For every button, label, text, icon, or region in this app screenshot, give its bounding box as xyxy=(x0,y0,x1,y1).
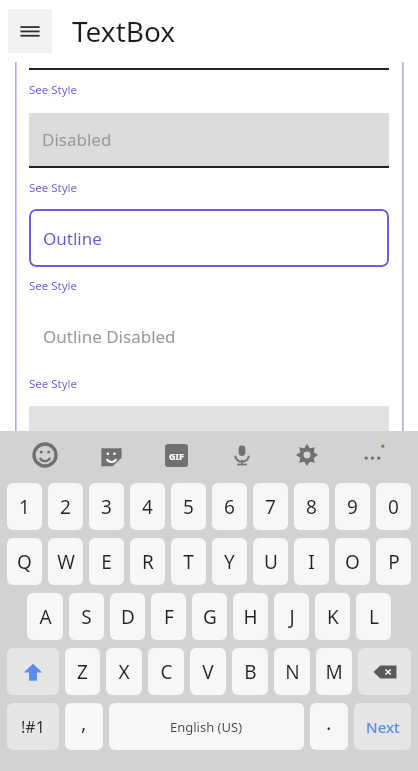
staticText: A xyxy=(39,604,52,630)
staticText: R xyxy=(142,549,154,575)
button[interactable]: B xyxy=(232,648,268,695)
button[interactable]: H xyxy=(233,593,268,640)
button[interactable]: S xyxy=(69,593,104,640)
staticText: TextBox xyxy=(72,12,176,50)
staticText: . xyxy=(326,709,332,736)
staticText: T xyxy=(183,549,194,575)
button[interactable]: Backspace xyxy=(358,648,411,695)
staticText: V xyxy=(202,659,214,685)
button[interactable]: Stickers xyxy=(91,435,131,475)
button[interactable]: Y xyxy=(212,538,247,585)
staticText: E xyxy=(101,549,112,575)
button[interactable]: See Style xyxy=(29,82,78,98)
button[interactable]: 9 xyxy=(335,483,370,530)
staticText: Disabled xyxy=(42,128,112,151)
button[interactable]: See Style xyxy=(29,278,78,294)
button[interactable]: E xyxy=(89,538,124,585)
button[interactable] xyxy=(29,406,389,444)
staticText: C xyxy=(160,659,173,685)
staticText: 0 xyxy=(388,494,399,520)
button[interactable]: Shift xyxy=(7,648,59,695)
button[interactable]: 0 xyxy=(376,483,411,530)
button[interactable]: Disabled xyxy=(29,113,389,166)
button[interactable]: Z xyxy=(65,648,100,695)
button[interactable]: , xyxy=(65,703,103,750)
staticText: , xyxy=(81,709,87,736)
staticText: G xyxy=(203,604,217,630)
button[interactable]: 5 xyxy=(171,483,206,530)
staticText: K xyxy=(327,604,339,630)
button[interactable]: D xyxy=(110,593,145,640)
staticText: F xyxy=(164,604,174,630)
button[interactable]: English (US) xyxy=(109,703,304,750)
staticText: Outline Disabled xyxy=(43,325,176,348)
button[interactable]: W xyxy=(48,538,83,585)
button[interactable]: A xyxy=(27,593,63,640)
button[interactable]: More options xyxy=(353,435,393,475)
button[interactable]: C xyxy=(148,648,184,695)
staticText: U xyxy=(264,549,278,575)
staticText: Z xyxy=(77,659,88,685)
staticText: 6 xyxy=(224,494,235,520)
button[interactable]: Voice input xyxy=(222,435,262,475)
button[interactable]: X xyxy=(106,648,142,695)
staticText: 7 xyxy=(265,494,276,520)
staticText: D xyxy=(121,604,135,630)
button[interactable]: 4 xyxy=(130,483,165,530)
staticText: 2 xyxy=(60,494,71,520)
staticText: 1 xyxy=(19,494,30,520)
button[interactable]: GIF xyxy=(156,435,196,475)
button[interactable]: 7 xyxy=(253,483,288,530)
button[interactable]: G xyxy=(192,593,227,640)
button[interactable]: 3 xyxy=(89,483,124,530)
staticText: X xyxy=(118,659,130,685)
staticText: Y xyxy=(224,549,235,575)
staticText: N xyxy=(285,659,300,685)
staticText: English (US) xyxy=(170,718,243,736)
button[interactable]: . xyxy=(310,703,348,750)
button[interactable]: K xyxy=(315,593,350,640)
button[interactable]: V xyxy=(190,648,226,695)
staticText: S xyxy=(81,604,92,630)
button[interactable]: F xyxy=(151,593,186,640)
staticText: O xyxy=(345,549,360,575)
button[interactable]: M xyxy=(316,648,352,695)
staticText: P xyxy=(388,549,400,575)
button[interactable]: !#1 xyxy=(7,703,59,750)
staticText: 9 xyxy=(347,494,358,520)
staticText: H xyxy=(243,604,258,630)
button[interactable]: See Style xyxy=(29,180,78,196)
button[interactable]: 8 xyxy=(294,483,329,530)
staticText: Q xyxy=(17,549,32,575)
button[interactable]: Emoji xyxy=(25,435,65,475)
staticText: L xyxy=(369,604,379,630)
button[interactable]: Outline Disabled xyxy=(29,307,389,365)
button[interactable]: N xyxy=(274,648,310,695)
button[interactable]: Settings xyxy=(287,435,327,475)
button[interactable]: Menu xyxy=(8,9,52,53)
button[interactable]: Outline xyxy=(29,209,389,267)
staticText: 4 xyxy=(142,494,153,520)
button[interactable]: 6 xyxy=(212,483,247,530)
button[interactable]: 1 xyxy=(7,483,42,530)
button[interactable]: Q xyxy=(7,538,42,585)
button[interactable]: P xyxy=(376,538,411,585)
staticText: See Style xyxy=(29,82,78,98)
button[interactable]: J xyxy=(274,593,309,640)
staticText: See Style xyxy=(29,376,78,392)
staticText: W xyxy=(57,549,75,575)
button[interactable]: L xyxy=(356,593,391,640)
staticText: I xyxy=(308,549,315,575)
button[interactable]: Next xyxy=(354,703,411,750)
button[interactable]: 2 xyxy=(48,483,83,530)
button[interactable]: T xyxy=(171,538,206,585)
staticText: Outline xyxy=(43,227,102,250)
button[interactable]: O xyxy=(335,538,370,585)
button[interactable]: R xyxy=(130,538,165,585)
staticText: Next xyxy=(366,717,400,737)
button[interactable]: U xyxy=(253,538,288,585)
staticText: 8 xyxy=(306,494,317,520)
button[interactable]: See Style xyxy=(29,376,78,392)
button[interactable]: I xyxy=(294,538,329,585)
staticText: See Style xyxy=(29,180,78,196)
